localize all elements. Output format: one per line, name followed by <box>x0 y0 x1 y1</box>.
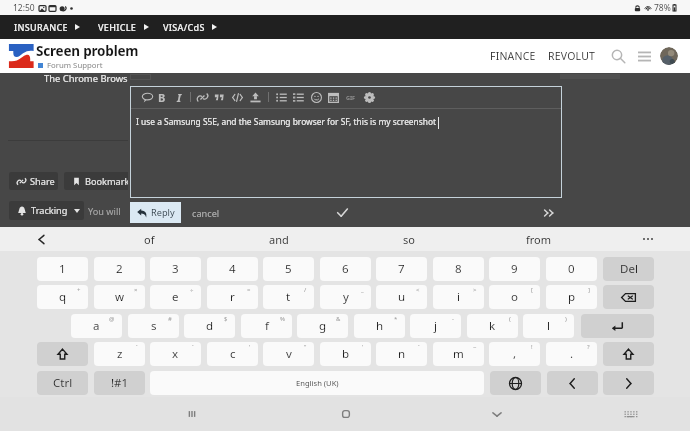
staticText: ´ <box>136 343 138 351</box>
button[interactable]: l <box>523 314 574 338</box>
button[interactable]: Hide keyboard <box>486 403 508 425</box>
button[interactable]: q <box>37 285 88 309</box>
button[interactable]: n <box>376 342 427 366</box>
button[interactable]: Search <box>607 45 629 67</box>
staticText: . <box>570 346 574 362</box>
staticText: * <box>394 315 398 323</box>
button[interactable]: g <box>297 314 348 338</box>
button[interactable]: 9 <box>489 257 540 281</box>
button[interactable]: m <box>433 342 484 366</box>
button[interactable]: 5 <box>263 257 314 281</box>
staticText: c <box>230 346 236 362</box>
button[interactable]: Tracking <box>9 201 84 220</box>
button[interactable]: 0 <box>546 257 597 281</box>
button[interactable]: Ctrl <box>37 371 88 395</box>
button[interactable]: c <box>207 342 258 366</box>
button[interactable]: left <box>547 371 598 395</box>
button[interactable]: Recents <box>181 403 203 425</box>
button[interactable]: right <box>603 371 654 395</box>
staticText: REVOLUT <box>548 49 596 63</box>
staticText: ! <box>531 343 533 351</box>
staticText: 3 <box>172 261 179 277</box>
staticText: 8 <box>455 261 462 277</box>
button[interactable]: d <box>184 314 235 338</box>
button[interactable]: VEHICLE <box>98 15 149 39</box>
button[interactable]: Reply <box>130 202 181 223</box>
button[interactable]: z <box>94 342 145 366</box>
button[interactable]: Keyboard layout <box>619 403 641 425</box>
button[interactable]: shift <box>603 342 654 366</box>
button[interactable]: Profile <box>660 47 678 65</box>
button[interactable]: English (UK) <box>150 371 484 395</box>
staticText: v <box>286 346 292 362</box>
button[interactable]: x <box>150 342 201 366</box>
button[interactable]: !#1 <box>94 371 145 395</box>
staticText: a <box>93 318 100 334</box>
staticText: 9 <box>511 261 518 277</box>
button[interactable]: k <box>467 314 518 338</box>
button[interactable]: t <box>263 285 314 309</box>
staticText: and <box>269 232 289 247</box>
button[interactable]: Bookmark <box>64 172 130 190</box>
staticText: _ <box>361 286 364 294</box>
button[interactable]: Confirm <box>334 204 351 221</box>
staticText: Tracking <box>31 204 68 217</box>
button[interactable]: FINANCE <box>487 43 539 69</box>
button[interactable]: s <box>128 314 179 338</box>
button[interactable]: 6 <box>320 257 371 281</box>
staticText: b <box>342 346 350 362</box>
button[interactable]: 2 <box>94 257 145 281</box>
button[interactable]: cancel <box>188 204 224 223</box>
button[interactable]: 1 <box>37 257 88 281</box>
staticText: ' <box>362 343 364 351</box>
button[interactable]: j <box>410 314 461 338</box>
button[interactable]: Previous <box>32 230 50 248</box>
button[interactable]: and <box>239 227 319 251</box>
button[interactable]: INSURANCE <box>14 15 80 39</box>
button[interactable]: , <box>489 342 540 366</box>
button[interactable]: w <box>94 285 145 309</box>
staticText: of <box>144 232 155 247</box>
button[interactable]: backspace <box>603 285 654 309</box>
button[interactable]: Share <box>9 172 58 190</box>
button[interactable]: e <box>150 285 201 309</box>
button[interactable]: a <box>71 314 122 338</box>
button[interactable]: globe <box>490 371 541 395</box>
button[interactable]: h <box>354 314 405 338</box>
button[interactable]: so <box>369 227 449 251</box>
button[interactable]: p <box>546 285 597 309</box>
button[interactable]: . <box>546 342 597 366</box>
staticText: + <box>77 286 81 294</box>
button[interactable]: VISA/CdS <box>163 15 217 39</box>
staticText: , <box>513 346 517 362</box>
button[interactable]: o <box>489 285 540 309</box>
button[interactable]: y <box>320 285 371 309</box>
button[interactable]: u <box>376 285 427 309</box>
button[interactable]: 3 <box>150 257 201 281</box>
button[interactable]: b <box>320 342 371 366</box>
button[interactable]: Del <box>603 257 654 281</box>
button[interactable]: from <box>499 227 579 251</box>
button[interactable]: REVOLUT <box>545 43 599 69</box>
button[interactable]: Expand <box>540 204 557 221</box>
staticText: t <box>286 289 291 305</box>
button[interactable]: 8 <box>433 257 484 281</box>
staticText: ( <box>509 315 511 323</box>
button[interactable]: 7 <box>376 257 427 281</box>
button[interactable]: Menu <box>633 45 655 67</box>
button[interactable]: r <box>207 285 258 309</box>
button[interactable]: v <box>263 342 314 366</box>
staticText: 0 <box>568 261 575 277</box>
staticText: cancel <box>192 207 220 220</box>
button[interactable]: f <box>241 314 292 338</box>
staticText: > <box>473 286 477 294</box>
button[interactable]: 4 <box>207 257 258 281</box>
staticText: Forum Support <box>47 60 103 71</box>
staticText: d <box>206 318 214 334</box>
button[interactable]: i <box>433 285 484 309</box>
button[interactable]: of <box>109 227 189 251</box>
button[interactable]: shift <box>37 342 88 366</box>
button[interactable]: enter <box>581 314 654 338</box>
button[interactable]: More suggestions <box>638 229 658 249</box>
button[interactable]: Home <box>335 403 357 425</box>
